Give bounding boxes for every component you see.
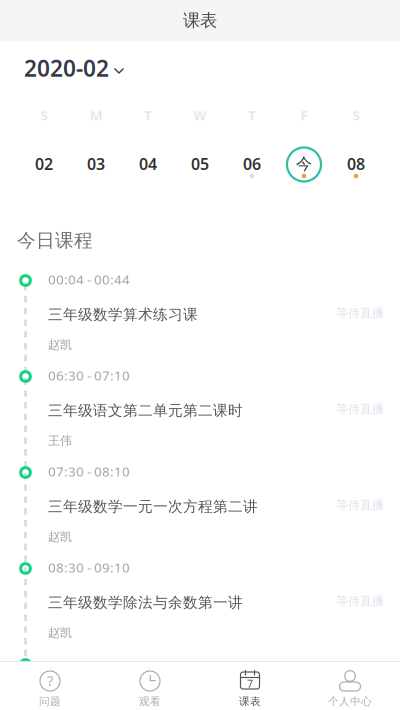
staticText: 07:30 - 08:10: [48, 462, 130, 480]
staticText: 今日课程: [17, 229, 93, 252]
staticText: T: [144, 106, 152, 124]
button[interactable]: 05: [174, 147, 226, 191]
button[interactable]: 03: [70, 147, 122, 191]
button[interactable]: 个人中心: [300, 661, 400, 710]
staticText: 今: [296, 154, 312, 174]
staticText: 08:30 - 09:10: [48, 558, 130, 576]
staticText: S: [40, 106, 47, 124]
staticText: 三年级语文第二单元第二课时: [48, 401, 243, 419]
staticText: 00:04 - 00:44: [48, 270, 130, 288]
button[interactable]: 观看: [100, 661, 200, 710]
staticText: 等待直播: [336, 594, 384, 608]
staticText: 02: [35, 153, 53, 174]
button[interactable]: 08: [330, 147, 382, 191]
staticText: 等待直播: [336, 498, 384, 512]
staticText: S: [352, 106, 359, 124]
staticText: 7: [247, 676, 253, 691]
staticText: 课表: [183, 10, 217, 31]
staticText: 观看: [139, 695, 161, 708]
button[interactable]: 06:30 - 07:10: [0, 361, 400, 457]
staticText: 赵凯: [48, 625, 72, 640]
staticText: 三年级数学算术练习课: [48, 305, 198, 323]
staticText: ?: [47, 671, 53, 690]
button[interactable]: 10:30 - 10:40: [0, 649, 400, 710]
staticText: 三年级数学除法与余数第一讲: [48, 593, 243, 611]
button[interactable]: 今: [278, 147, 330, 191]
button[interactable]: 2020-02: [0, 51, 136, 85]
staticText: T: [248, 106, 256, 124]
button[interactable]: 06: [226, 147, 278, 191]
staticText: 三年级数学一元一次方程第二讲: [48, 497, 258, 515]
staticText: 05: [191, 153, 209, 174]
button[interactable]: 7: [200, 661, 300, 710]
staticText: 等待直播: [336, 306, 384, 320]
staticText: 赵凯: [48, 529, 72, 544]
staticText: 06: [243, 153, 261, 174]
button[interactable]: 04: [122, 147, 174, 191]
staticText: 赵凯: [48, 337, 72, 352]
button[interactable]: ?: [0, 661, 100, 710]
staticText: 王伟: [48, 433, 72, 448]
button[interactable]: 07:30 - 08:10: [0, 457, 400, 553]
staticText: 08: [347, 153, 365, 174]
staticText: 等待直播: [336, 690, 384, 704]
button[interactable]: 08:30 - 09:10: [0, 553, 400, 649]
staticText: F: [300, 106, 307, 124]
staticText: 三年级英语第一单元: [48, 689, 183, 707]
staticText: 2020-02: [24, 53, 109, 83]
staticText: W: [193, 106, 206, 124]
staticText: 10:30 - 10:40: [48, 654, 130, 672]
button[interactable]: 02: [18, 147, 70, 191]
staticText: 个人中心: [328, 695, 372, 708]
staticText: 课表: [239, 695, 261, 708]
staticText: 问题: [39, 695, 61, 708]
staticText: M: [90, 106, 102, 124]
staticText: 04: [139, 153, 157, 174]
button[interactable]: 00:04 - 00:44: [0, 265, 400, 361]
staticText: 06:30 - 07:10: [48, 366, 130, 384]
staticText: 等待直播: [336, 402, 384, 416]
staticText: 03: [87, 153, 105, 174]
